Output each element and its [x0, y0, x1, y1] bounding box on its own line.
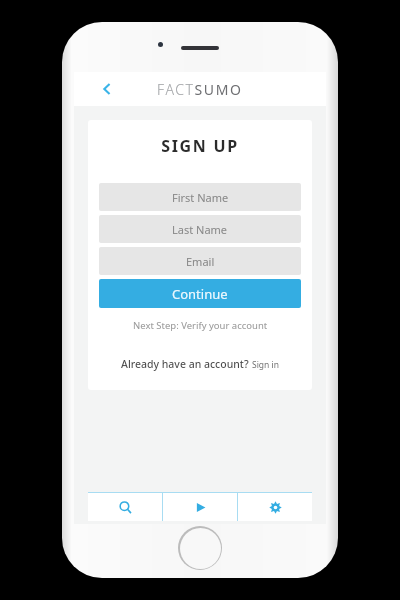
staticText: First Name: [172, 190, 229, 205]
button[interactable]: First Name: [99, 183, 301, 211]
button[interactable]: Last Name: [99, 215, 301, 243]
staticText: FACTSUMO: [157, 80, 243, 99]
button[interactable]: Continue: [99, 279, 301, 308]
button[interactable]: Already have an account?: [121, 357, 279, 371]
staticText: Already have an account?: [121, 357, 249, 371]
button[interactable]: Back: [94, 76, 120, 102]
staticText: Next Step: Verify your account: [133, 319, 268, 332]
button[interactable]: Search: [88, 493, 162, 521]
staticText: Continue: [172, 285, 228, 303]
staticText: Last Name: [172, 222, 228, 237]
staticText: Email: [186, 254, 215, 269]
button[interactable]: Play: [163, 493, 237, 521]
staticText: SIGN UP: [161, 135, 239, 157]
button[interactable]: Settings: [238, 493, 312, 521]
staticText: Sign in: [252, 359, 279, 371]
button[interactable]: Email: [99, 247, 301, 275]
